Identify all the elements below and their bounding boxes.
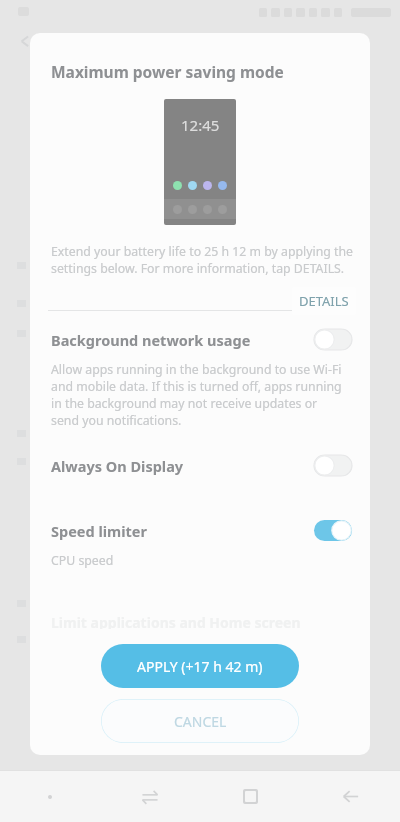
button[interactable]: Toggle on	[314, 520, 352, 541]
staticText: 12:45	[181, 115, 220, 135]
staticText: CANCEL	[174, 712, 227, 731]
button[interactable]: Always On Display	[30, 455, 370, 476]
button[interactable]: Back	[300, 771, 400, 822]
button[interactable]: DETAILS	[292, 287, 356, 315]
staticText: Limit applications and Home screen	[51, 613, 301, 629]
button[interactable]: Background network usage	[30, 311, 370, 350]
button[interactable]: Limit applications and Home screen	[30, 613, 370, 629]
staticText: CPU speed	[51, 552, 114, 569]
staticText: Background network usage	[51, 330, 314, 350]
staticText: Maximum power saving mode	[51, 61, 284, 82]
button[interactable]: APPLY (+17 h 42 m)	[101, 644, 299, 688]
staticText: Always On Display	[51, 456, 314, 476]
staticText: Allow apps running in the background to …	[51, 361, 342, 429]
button[interactable]: CANCEL	[101, 699, 299, 743]
staticText: APPLY (+17 h 42 m)	[137, 657, 263, 676]
staticText: DETAILS	[299, 292, 349, 310]
button[interactable]: Recents	[100, 771, 200, 822]
button[interactable]: Toggle off	[314, 329, 352, 350]
staticText: Extend your battery life to 25 h 12 m by…	[51, 243, 354, 277]
button[interactable]: Home	[200, 771, 300, 822]
button[interactable]: Speed limiter	[30, 520, 370, 541]
staticText: Speed limiter	[51, 521, 314, 541]
button[interactable]: Toggle off	[314, 455, 352, 476]
